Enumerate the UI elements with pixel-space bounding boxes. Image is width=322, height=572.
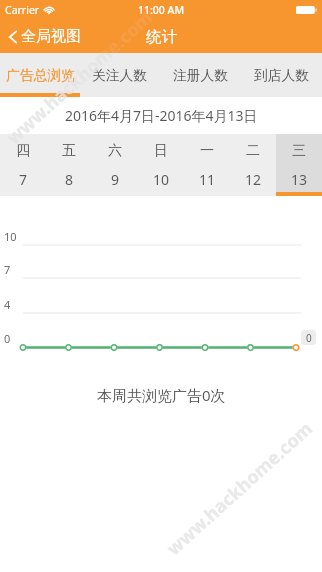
- staticText: 4: [4, 297, 11, 312]
- staticText: 五: [62, 142, 76, 160]
- staticText: 0: [306, 331, 312, 345]
- staticText: 统计: [146, 27, 177, 47]
- staticText: 10: [153, 170, 170, 189]
- staticText: 六: [108, 142, 122, 160]
- staticText: 10: [4, 229, 17, 244]
- staticText: 13: [291, 170, 308, 189]
- staticText: 8: [65, 170, 74, 189]
- button[interactable]: 六: [92, 134, 138, 196]
- staticText: 注册人数: [173, 67, 229, 84]
- staticText: 广告总浏览: [6, 67, 75, 84]
- button[interactable]: 一: [184, 134, 230, 196]
- staticText: 本周共浏览广告0次: [97, 385, 226, 405]
- staticText: 11:00 AM: [138, 3, 185, 17]
- staticText: 三: [292, 142, 306, 160]
- button[interactable]: 五: [46, 134, 92, 196]
- staticText: 7: [4, 262, 11, 277]
- staticText: 全局视图: [21, 27, 81, 46]
- staticText: 四: [16, 142, 30, 160]
- staticText: 一: [200, 142, 214, 160]
- button[interactable]: 关注人数: [80, 53, 160, 97]
- staticText: 7: [19, 170, 28, 189]
- other: Back: [9, 30, 17, 44]
- button[interactable]: 日: [138, 134, 184, 196]
- staticText: 9: [111, 170, 120, 189]
- button[interactable]: 注册人数: [160, 53, 241, 97]
- button[interactable]: Back: [0, 20, 89, 53]
- staticText: 二: [246, 142, 260, 160]
- button[interactable]: 三: [276, 134, 322, 196]
- staticText: 12: [245, 170, 262, 189]
- button[interactable]: 广告总浏览: [0, 53, 80, 97]
- staticText: 2016年4月7日-2016年4月13日: [65, 106, 258, 125]
- staticText: 日: [154, 142, 168, 160]
- staticText: 11: [199, 170, 216, 189]
- button[interactable]: 四: [0, 134, 46, 196]
- staticText: 到店人数: [254, 67, 310, 84]
- other: Battery: [296, 6, 317, 14]
- staticText: Carrier: [5, 3, 40, 17]
- button[interactable]: 二: [230, 134, 276, 196]
- staticText: 0: [4, 331, 11, 346]
- button[interactable]: 到店人数: [241, 53, 322, 97]
- staticText: 关注人数: [92, 67, 148, 84]
